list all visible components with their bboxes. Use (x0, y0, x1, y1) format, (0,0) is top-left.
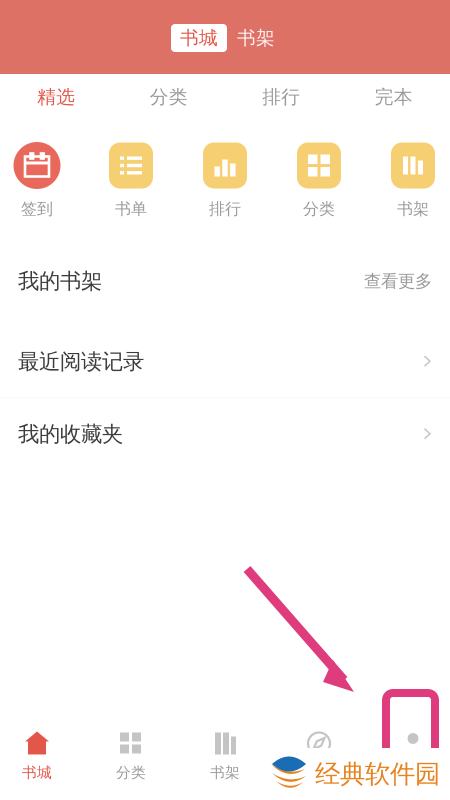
button[interactable]: 分类 (112, 74, 225, 120)
button[interactable]: 书架 (389, 142, 436, 219)
staticText: 我的收藏夹 (18, 421, 123, 447)
button[interactable]: 签到 (13, 142, 60, 219)
staticText: 查看更多 (364, 270, 432, 292)
staticText: 书架 (210, 763, 240, 781)
staticText: 书城 (22, 763, 52, 781)
button[interactable]: 完本 (337, 74, 450, 120)
staticText: 经典软件园 (315, 758, 440, 789)
staticText: 我的书架 (18, 268, 102, 294)
button[interactable]: 书城 (0, 720, 77, 792)
button[interactable]: 排行 (201, 142, 248, 219)
button[interactable]: 书单 (107, 142, 154, 219)
button[interactable]: 书架 (236, 24, 276, 52)
staticText: 签到 (21, 199, 53, 219)
staticText: 分类 (150, 85, 188, 108)
staticText: 分类 (303, 199, 335, 219)
staticText: 排行 (262, 85, 300, 108)
button[interactable]: 精选 (0, 74, 112, 120)
staticText: 书单 (115, 199, 147, 219)
button[interactable]: 书架 (185, 720, 265, 792)
staticText: 完本 (375, 85, 413, 108)
staticText: 排行 (209, 199, 241, 219)
staticText: 最近阅读记录 (18, 349, 144, 375)
button[interactable]: 我的书架 (0, 237, 450, 326)
button[interactable]: 书城 (171, 24, 227, 52)
button[interactable]: 分类 (295, 142, 342, 219)
button[interactable]: 分类 (91, 720, 171, 792)
button[interactable]: 发现 (279, 720, 359, 792)
staticText: 发现 (304, 764, 334, 782)
staticText: 精选 (37, 85, 75, 108)
staticText: 书架 (237, 26, 275, 49)
button[interactable]: 排行 (225, 74, 337, 120)
button[interactable]: 我的 (373, 720, 450, 792)
button[interactable]: 最近阅读记录 (0, 326, 450, 398)
staticText: 书城 (180, 26, 218, 49)
staticText: 分类 (116, 763, 146, 781)
button[interactable]: 我的收藏夹 (0, 398, 450, 471)
staticText: 书架 (397, 199, 429, 219)
staticText: 我的 (398, 763, 428, 781)
